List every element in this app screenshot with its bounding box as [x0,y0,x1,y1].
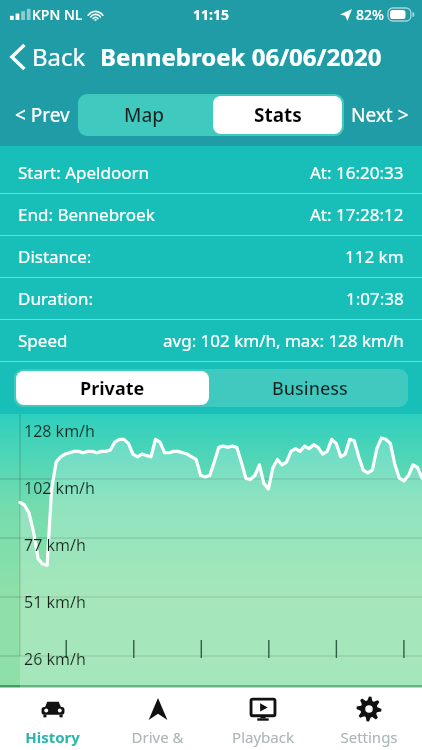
button[interactable]: Speed [0,320,422,361]
button[interactable]: Distance: [0,236,422,277]
button[interactable]: Stats [213,96,342,134]
staticText: 82% [356,5,384,24]
staticText: Duration: [18,287,94,310]
staticText: 26 km/h [24,648,86,670]
staticText: 51 km/h [24,591,86,613]
staticText: Business [272,376,348,401]
button[interactable]: Drive & Record [105,688,210,750]
staticText: KPN NL [32,5,83,24]
button[interactable]: Next > [344,84,416,146]
button[interactable]: Duration: [0,278,422,319]
button[interactable]: Business [211,369,408,407]
button[interactable]: Back [0,34,92,79]
staticText: Speed [18,329,68,352]
staticText: At: 16:20:33 [310,161,404,184]
staticText: Back [32,40,86,73]
button[interactable]: < Prev [6,84,78,146]
staticText: Playback [232,727,294,747]
button[interactable]: Playback [210,688,316,750]
staticText: Private [80,376,145,401]
staticText: History [25,727,80,747]
other: Playback [250,696,276,722]
button[interactable]: History [0,688,105,750]
other: History [40,696,66,722]
button[interactable]: Settings [316,688,422,750]
staticText: Drive & Record [105,727,210,750]
other: Settings [356,696,382,722]
staticText: 77 km/h [24,534,86,556]
button[interactable]: Map [78,94,211,136]
staticText: Distance: [18,245,92,268]
other: Drive & Record [145,696,171,722]
staticText: 128 km/h [24,420,95,442]
staticText: At: 17:28:12 [310,203,404,226]
staticText: Settings [340,727,398,747]
staticText: avg: 102 km/h, max: 128 km/h [163,329,404,352]
staticText: Bennebroek 06/06/2020 [100,40,382,73]
staticText: < Prev [15,102,70,128]
button[interactable]: End: Bennebroek [0,194,422,235]
staticText: Next > [351,102,409,128]
staticText: 11:15 [193,5,229,24]
staticText: 1:07:38 [346,287,404,310]
button[interactable]: Private [16,371,209,405]
staticText: End: Bennebroek [18,203,155,226]
staticText: Stats [254,102,302,128]
staticText: Start: Apeldoorn [18,161,149,184]
staticText: 102 km/h [24,477,95,499]
button[interactable]: Start: Apeldoorn [0,152,422,193]
staticText: 112 km [345,245,404,268]
staticText: Map [124,102,165,128]
